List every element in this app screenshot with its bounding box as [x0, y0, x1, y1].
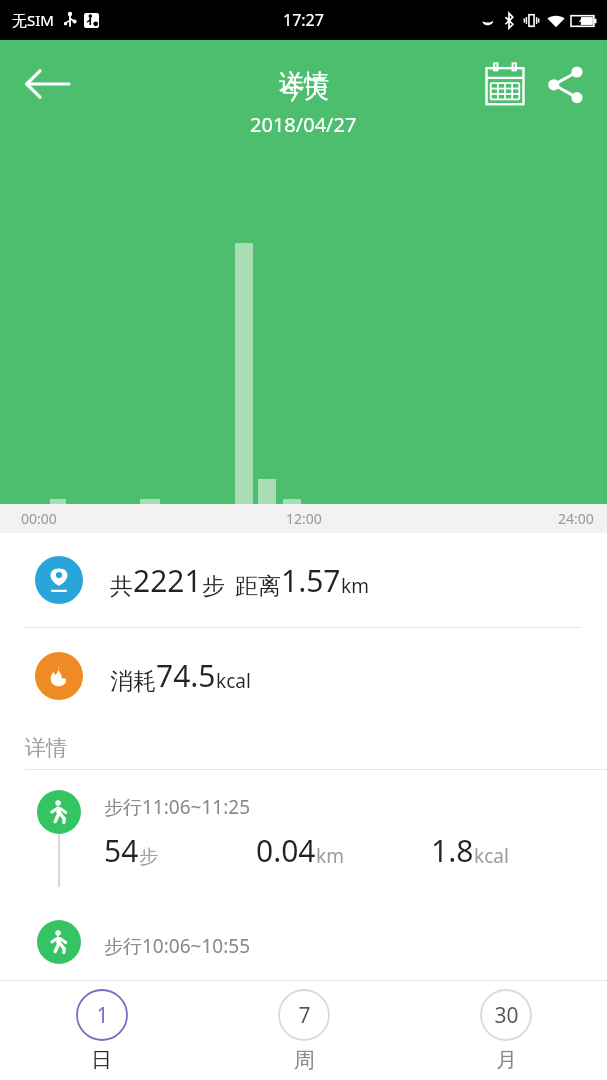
staticText: 74.5 [156, 655, 216, 696]
staticText: 54 [104, 830, 139, 871]
staticText: 17:27 [283, 9, 324, 31]
staticText: 步行10:06~10:55 [104, 933, 250, 959]
staticText: 月 [496, 1047, 517, 1073]
staticText: 7 [298, 1001, 311, 1030]
staticText: 消耗 [110, 667, 156, 696]
staticText: 今天 [279, 74, 329, 105]
staticText: 详情 [279, 68, 329, 99]
staticText: km [316, 843, 344, 869]
staticText: 距离 [235, 572, 281, 601]
button[interactable]: 步行11:06~11:25 [0, 770, 607, 871]
button[interactable]: Calendar [477, 56, 533, 112]
button[interactable]: Share [537, 56, 593, 112]
staticText: 共 [110, 572, 133, 601]
button[interactable]: 7 [203, 981, 405, 1080]
button[interactable]: 1 [0, 981, 203, 1080]
staticText: 12:00 [286, 509, 322, 528]
staticText: 详情 [25, 735, 67, 761]
button[interactable]: 消耗 [0, 628, 607, 723]
staticText: 无SIM [12, 10, 54, 30]
staticText: kcal [216, 668, 251, 694]
staticText: 2018/04/27 [250, 111, 357, 138]
staticText: 1.57 [281, 560, 341, 601]
staticText: 2221 [133, 560, 202, 601]
staticText: 1 [96, 1001, 109, 1030]
staticText: 步 [202, 572, 225, 601]
staticText: km [341, 573, 369, 599]
staticText: 步 [139, 845, 158, 869]
staticText: 1.8 [431, 830, 474, 871]
staticText: 00:00 [21, 509, 57, 528]
button[interactable]: 共 [0, 533, 607, 627]
staticText: 步行11:06~11:25 [104, 794, 250, 820]
button[interactable]: 30 [405, 981, 607, 1080]
staticText: 30 [494, 1001, 519, 1030]
staticText: 0.04 [256, 830, 316, 871]
staticText: kcal [474, 843, 509, 869]
staticText: 24:00 [558, 509, 594, 528]
button[interactable]: Back [18, 55, 76, 113]
staticText: 周 [294, 1047, 315, 1073]
button[interactable]: 步行10:06~10:55 [0, 920, 607, 975]
staticText: 日 [91, 1047, 112, 1073]
